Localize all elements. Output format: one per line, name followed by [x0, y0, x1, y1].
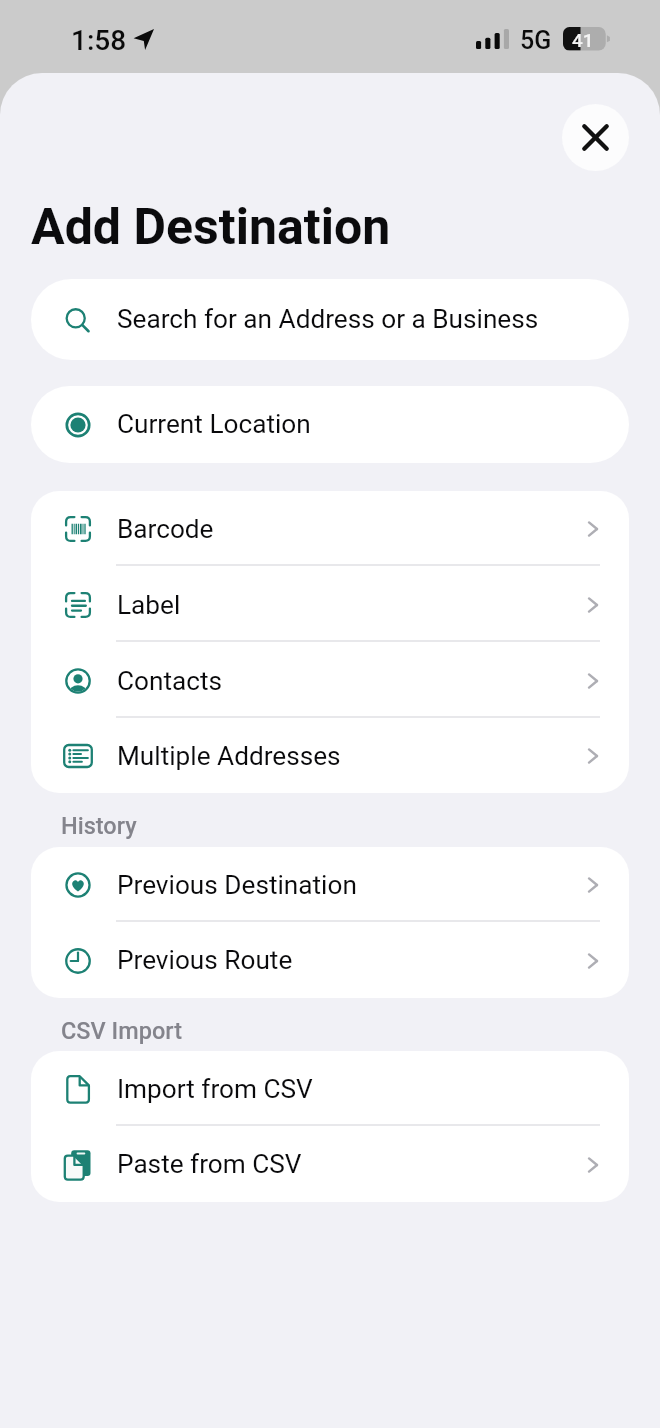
staticText: 5G: [520, 26, 552, 55]
staticText: CSV Import: [61, 1017, 182, 1045]
staticText: 1:58: [71, 24, 127, 57]
staticText: Current Location: [117, 409, 311, 440]
staticText: Multiple Addresses: [117, 741, 341, 772]
staticText: Contacts: [117, 666, 223, 697]
staticText: Paste from CSV: [117, 1149, 302, 1180]
staticText: Label: [117, 590, 181, 621]
button[interactable]: Paste from CSV: [31, 1127, 629, 1202]
button[interactable]: Label: [31, 567, 629, 643]
staticText: Previous Destination: [117, 870, 357, 901]
button[interactable]: Current Location: [31, 386, 629, 463]
staticText: 41: [572, 29, 594, 51]
button[interactable]: Previous Destination: [31, 847, 629, 923]
staticText: History: [61, 812, 137, 840]
button[interactable]: Previous Route: [31, 923, 629, 998]
staticText: Previous Route: [117, 945, 293, 976]
staticText: Barcode: [117, 514, 214, 545]
button[interactable]: Import from CSV: [31, 1051, 629, 1127]
staticText: Add Destination: [31, 198, 391, 257]
button[interactable]: Barcode: [31, 491, 629, 567]
staticText: Search for an Address or a Business: [117, 304, 539, 335]
button[interactable]: Contacts: [31, 643, 629, 719]
button[interactable]: Multiple Addresses: [31, 719, 629, 793]
button[interactable]: Search for an Address or a Business: [31, 279, 629, 360]
staticText: Import from CSV: [117, 1074, 313, 1105]
button[interactable]: Close: [562, 104, 629, 171]
